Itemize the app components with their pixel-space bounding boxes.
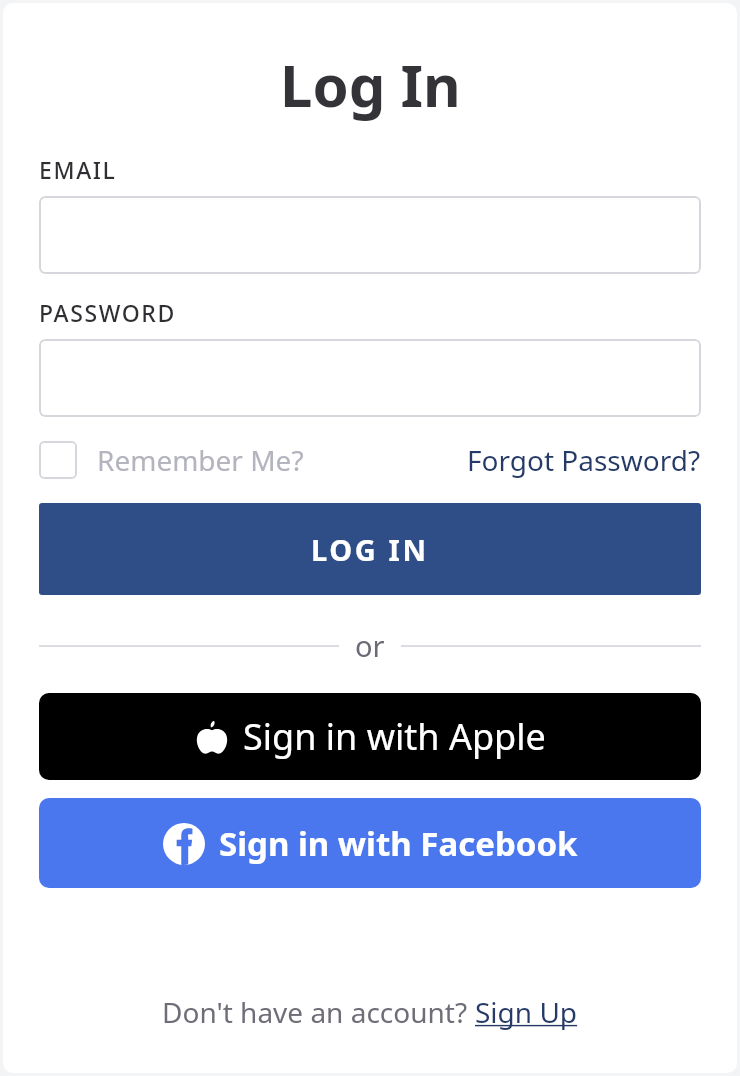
button[interactable] — [39, 339, 701, 417]
staticText: Forgot Password? — [467, 441, 701, 479]
button[interactable]: LOG IN — [39, 503, 701, 595]
staticText: EMAIL — [39, 154, 117, 185]
staticText: Don't have an account? — [162, 993, 475, 1031]
staticText: Log In — [280, 45, 461, 124]
staticText: Sign in with Facebook — [219, 821, 578, 866]
button[interactable]: Remember Me? — [39, 441, 310, 479]
staticText: or — [355, 626, 385, 665]
button[interactable]: Sign in with Facebook — [39, 798, 701, 888]
staticText: LOG IN — [311, 530, 429, 569]
staticText: Sign Up — [475, 993, 578, 1031]
button[interactable]: Sign Up — [475, 993, 578, 1031]
button[interactable]: Forgot Password? — [467, 441, 701, 479]
button[interactable] — [39, 196, 701, 274]
button[interactable]: Sign in with Apple — [39, 693, 701, 780]
staticText: PASSWORD — [39, 297, 176, 328]
staticText: Sign in with Apple — [243, 712, 546, 761]
staticText: Remember Me? — [97, 441, 304, 479]
